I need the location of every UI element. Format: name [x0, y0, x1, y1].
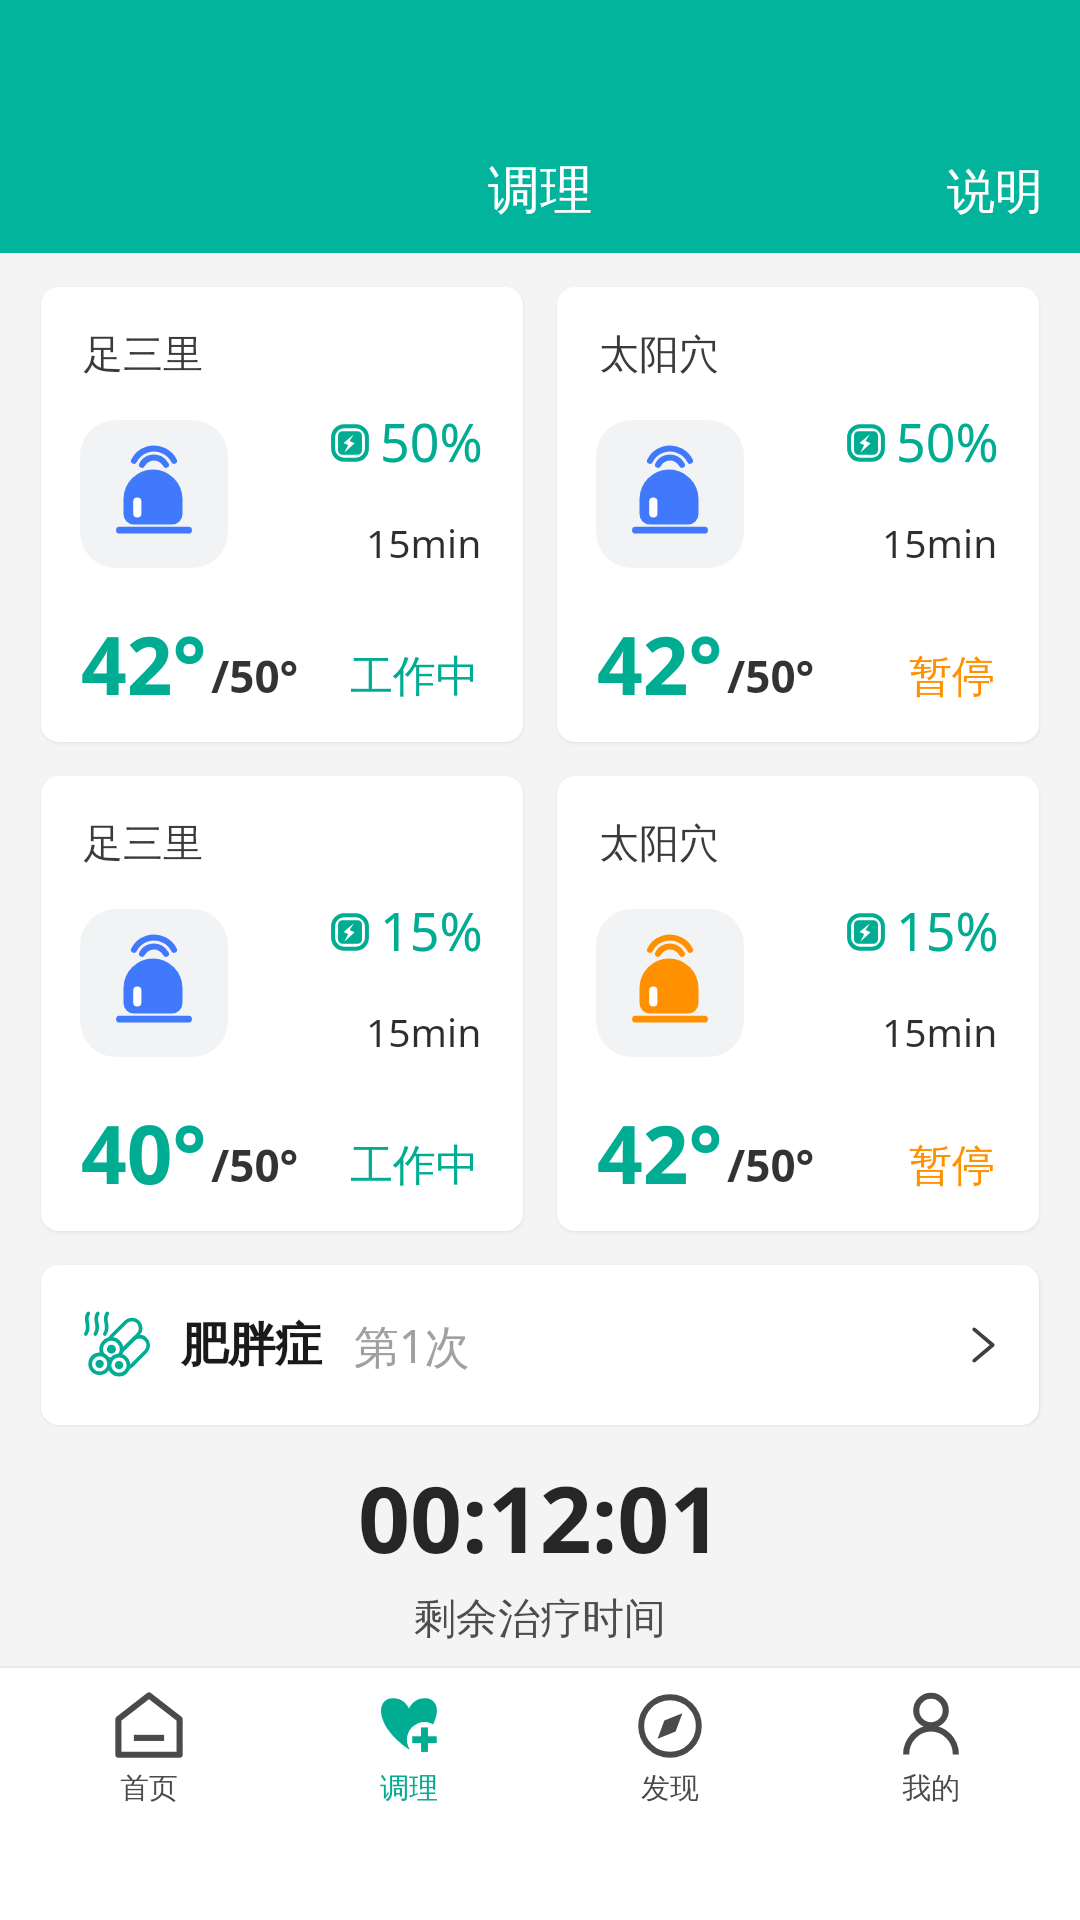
button[interactable]: Profile [800, 1668, 1061, 1920]
staticText: 15min [882, 1005, 998, 1058]
staticText: 首页 [120, 1770, 178, 1807]
staticText: 15% [380, 895, 483, 966]
button[interactable]: 说明 [903, 142, 1080, 253]
staticText: 足三里 [83, 329, 203, 379]
other: Discover [634, 1690, 706, 1762]
staticText: 发现 [641, 1770, 699, 1807]
staticText: 15min [366, 1005, 482, 1058]
staticText: 工作中 [350, 650, 479, 704]
staticText: 我的 [902, 1770, 960, 1807]
other: Therapy [373, 1690, 445, 1762]
staticText: 太阳穴 [599, 329, 719, 379]
button[interactable]: 太阳穴 [557, 287, 1039, 742]
staticText: 暂停 [909, 1139, 995, 1193]
staticText: 15% [896, 895, 999, 966]
staticText: /50° [211, 1135, 299, 1195]
staticText: 剩余治疗时间 [414, 1593, 666, 1646]
staticText: 足三里 [83, 818, 203, 868]
button[interactable]: Therapy [279, 1668, 539, 1920]
staticText: 15min [882, 516, 998, 569]
staticText: 42° [81, 609, 207, 718]
staticText: 太阳穴 [599, 818, 719, 868]
staticText: 40° [81, 1098, 207, 1207]
staticText: 第1次 [354, 1315, 470, 1376]
staticText: 50% [896, 406, 999, 477]
staticText: /50° [727, 646, 815, 706]
button[interactable]: 足三里 [41, 776, 523, 1231]
staticText: 调理 [488, 158, 592, 224]
staticText: 00:12:01 [358, 1456, 722, 1580]
staticText: 42° [597, 1098, 723, 1207]
staticText: /50° [727, 1135, 815, 1195]
staticText: 15min [366, 516, 482, 569]
staticText: 50% [380, 406, 483, 477]
staticText: 42° [597, 609, 723, 718]
staticText: 肥胖症 [181, 1316, 322, 1375]
staticText: 调理 [380, 1770, 438, 1807]
button[interactable]: 足三里 [41, 287, 523, 742]
staticText: /50° [211, 646, 299, 706]
button[interactable]: 太阳穴 [557, 776, 1039, 1231]
other: Home [113, 1690, 185, 1762]
staticText: 工作中 [350, 1139, 479, 1193]
staticText: 暂停 [909, 650, 995, 704]
other: Profile [895, 1690, 967, 1762]
button[interactable]: Discover [539, 1668, 800, 1920]
staticText: 说明 [947, 162, 1043, 222]
button[interactable]: 肥胖症 [41, 1265, 1039, 1425]
button[interactable]: Home [19, 1668, 279, 1920]
